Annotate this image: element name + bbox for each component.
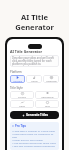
staticText: Curious	[18, 96, 26, 98]
staticText: • Lead with a number or a bold claim	[12, 129, 56, 132]
staticText: Generate Titles	[26, 113, 48, 117]
button[interactable]: Generate Titles	[10, 111, 59, 119]
staticText: TikTok	[31, 80, 38, 82]
staticText: Describe your video and we'll craft clic…	[12, 56, 54, 65]
staticText: • Add emotion words that spark clicks	[12, 141, 57, 144]
button[interactable]: Instagram	[43, 75, 59, 83]
staticText: • Test two variants before publishing	[12, 144, 55, 147]
staticText: Trend	[19, 105, 25, 107]
staticText: Title Style	[10, 86, 23, 90]
staticText: Educational	[41, 96, 54, 98]
button[interactable]: Curious	[10, 91, 34, 99]
button[interactable]: TikTok	[26, 75, 42, 83]
staticText: Platform	[10, 70, 22, 74]
staticText: Generator	[15, 22, 54, 32]
button[interactable]: YouTube	[10, 75, 25, 83]
staticText: AI Title	[21, 12, 48, 22]
staticText: • never get cut off in feeds	[12, 138, 43, 141]
staticText: YouTube	[13, 80, 22, 82]
button[interactable]: Bold	[35, 100, 59, 108]
button[interactable]: Educational	[35, 91, 59, 99]
staticText: Bold	[45, 105, 50, 107]
staticText: AI Title Generator	[10, 49, 43, 54]
button[interactable]: Trend	[10, 100, 34, 108]
staticText: Pro Tips	[15, 124, 27, 128]
staticText: • Keep titles under 60 characters so the…	[12, 132, 57, 138]
staticText: Instagram	[46, 80, 57, 82]
